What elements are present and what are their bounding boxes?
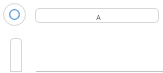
- button[interactable]: Vertical field: [10, 38, 22, 72]
- button[interactable]: A: [35, 8, 159, 23]
- staticText: A: [96, 13, 101, 23]
- button[interactable]: Radio: [3, 3, 26, 26]
